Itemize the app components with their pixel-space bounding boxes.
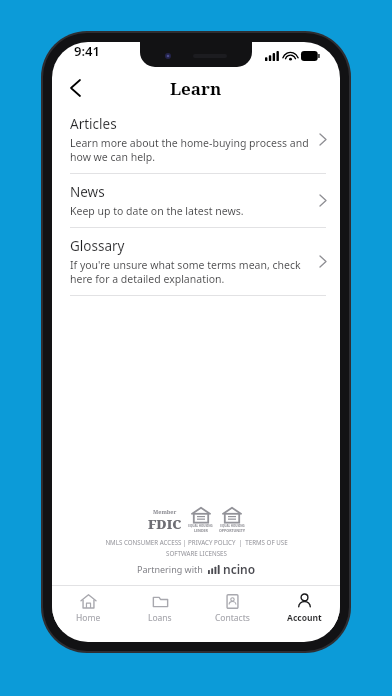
staticText: SOFTWARE LICENSES xyxy=(166,549,227,557)
staticText: Home xyxy=(76,612,101,624)
button[interactable]: Home xyxy=(52,590,124,627)
staticText: Account xyxy=(287,612,322,624)
staticText: Loans xyxy=(148,612,172,624)
staticText: LENDER xyxy=(194,528,208,533)
staticText: Contacts xyxy=(215,612,250,624)
staticText: News xyxy=(70,183,105,201)
button[interactable]: Contacts xyxy=(196,590,268,627)
staticText: Glossary xyxy=(70,237,125,255)
staticText: Partnering with xyxy=(137,563,203,575)
staticText: If you're unsure what some terms mean, c… xyxy=(70,258,312,286)
button[interactable]: News xyxy=(52,174,340,228)
button[interactable]: Back xyxy=(58,71,92,105)
staticText: Learn xyxy=(170,77,222,100)
staticText: EQUAL HOUSING xyxy=(220,524,245,528)
staticText: OPPORTUNITY xyxy=(219,528,245,533)
button[interactable]: Articles xyxy=(52,106,340,174)
button[interactable]: Loans xyxy=(124,590,196,627)
button[interactable]: Account xyxy=(268,590,340,627)
staticText: Member xyxy=(153,508,177,515)
staticText: Learn more about the home-buying process… xyxy=(70,136,312,164)
staticText: ncino xyxy=(223,561,256,577)
staticText: Articles xyxy=(70,115,117,133)
staticText: EQUAL HOUSING xyxy=(188,524,213,528)
button[interactable]: Glossary xyxy=(52,228,340,296)
staticText: 9:41 xyxy=(74,42,100,60)
staticText: FDIC xyxy=(148,515,182,533)
staticText: NMLS CONSUMER ACCESS | PRIVACY POLICY | … xyxy=(105,538,288,546)
staticText: Keep up to date on the latest news. xyxy=(70,204,244,218)
